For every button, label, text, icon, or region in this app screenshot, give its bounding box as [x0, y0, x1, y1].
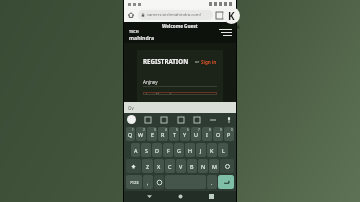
staticText: 1: [132, 128, 134, 132]
button[interactable]: Back: [143, 191, 155, 202]
button[interactable]: Recents: [205, 191, 217, 202]
button[interactable]: Settings: [177, 116, 185, 124]
button[interactable]: Backspace: [220, 159, 234, 173]
button[interactable]: P: [224, 127, 234, 141]
staticText: C: [168, 163, 172, 170]
button[interactable]: A: [131, 143, 140, 157]
button[interactable]: R: [158, 127, 168, 141]
staticText: M: [212, 163, 217, 170]
button[interactable]: F: [163, 143, 173, 157]
button[interactable]: Home: [174, 191, 186, 202]
button[interactable]: T: [169, 127, 179, 141]
staticText: 7: [198, 128, 200, 132]
button[interactable]: O: [213, 127, 223, 141]
staticText: K: [210, 147, 214, 154]
staticText: T: [173, 131, 176, 138]
button[interactable]: .: [207, 175, 217, 189]
button[interactable]: GIF: [160, 116, 168, 124]
staticText: or: [195, 59, 201, 65]
button[interactable]: N: [198, 159, 208, 173]
staticText: N: [201, 163, 206, 170]
button[interactable]: S: [141, 143, 151, 157]
staticText: Ov: [128, 105, 134, 111]
staticText: E: [151, 131, 154, 138]
button[interactable]: Menu: [226, 12, 233, 19]
button[interactable]: ?123: [126, 175, 142, 189]
button[interactable]: More: [209, 116, 217, 124]
staticText: CINEMA: [222, 24, 240, 30]
button[interactable]: U: [191, 127, 201, 141]
staticText: 6: [187, 128, 189, 132]
button[interactable]: M: [209, 159, 219, 173]
button[interactable]: H: [185, 143, 195, 157]
staticText: Welcome Guest: [162, 23, 198, 29]
button[interactable]: L: [218, 143, 228, 157]
staticText: mahindra: [129, 34, 155, 41]
button[interactable]: K: [207, 143, 217, 157]
staticText: 2: [143, 128, 145, 132]
staticText: V: [179, 163, 183, 170]
button[interactable]: Menu: [219, 28, 232, 37]
staticText: Sign in: [201, 59, 217, 65]
button[interactable]: Google: [127, 115, 136, 124]
button[interactable]: Anjney: [143, 76, 217, 87]
staticText: P: [227, 131, 231, 138]
staticText: A: [134, 147, 138, 154]
staticText: 4: [165, 128, 167, 132]
button[interactable]: W: [136, 127, 146, 141]
button[interactable]: careers.techmahindra.com/: [138, 10, 213, 20]
staticText: REGISTRATION: [143, 57, 189, 65]
button[interactable]: D: [152, 143, 162, 157]
button[interactable]: J: [196, 143, 206, 157]
button[interactable]: Tabs: [216, 12, 223, 19]
staticText: I: [206, 131, 208, 138]
staticText: R: [161, 131, 165, 138]
button[interactable]: Clipboard: [193, 116, 201, 124]
staticText: Anjney: [143, 79, 158, 85]
staticText: 8: [209, 128, 211, 132]
button[interactable]: Y: [180, 127, 190, 141]
staticText: W: [138, 131, 144, 138]
button[interactable]: Shift: [126, 159, 141, 173]
staticText: D: [155, 147, 159, 154]
staticText: 5: [176, 128, 178, 132]
button[interactable]: Voice input: [225, 116, 233, 124]
staticText: U: [194, 131, 198, 138]
button[interactable]: Last Name*: [143, 92, 217, 95]
button[interactable]: Z: [142, 159, 153, 173]
staticText: Y: [183, 131, 187, 138]
staticText: Q: [128, 131, 133, 138]
button[interactable]: V: [176, 159, 186, 173]
staticText: TECH: [129, 29, 139, 34]
staticText: J: [200, 147, 202, 154]
button[interactable]: Enter: [218, 175, 234, 189]
button[interactable]: Home: [127, 11, 135, 19]
staticText: B: [190, 163, 194, 170]
staticText: 3: [154, 128, 156, 132]
staticText: ?123: [130, 180, 139, 185]
button[interactable]: E: [147, 127, 157, 141]
staticText: careers.techmahindra.com/: [147, 12, 202, 18]
staticText: .: [211, 179, 213, 186]
button[interactable]: G: [174, 143, 184, 157]
staticText: Last Name*: [146, 92, 172, 95]
button[interactable]: or: [195, 59, 217, 65]
button[interactable]: I: [202, 127, 212, 141]
staticText: 0: [231, 128, 233, 132]
button[interactable]: Emoji: [154, 175, 164, 189]
staticText: S: [145, 147, 148, 154]
button[interactable]: C: [165, 159, 175, 173]
staticText: Z: [146, 163, 150, 170]
button[interactable]: Stickers: [144, 116, 152, 124]
staticText: H: [188, 147, 192, 154]
staticText: L: [222, 147, 225, 154]
staticText: X: [157, 163, 161, 170]
button[interactable]: ,: [143, 175, 153, 189]
button[interactable]: Q: [126, 127, 135, 141]
staticText: ,: [147, 179, 149, 186]
button[interactable]: B: [187, 159, 197, 173]
button[interactable]: X: [154, 159, 164, 173]
staticText: G: [177, 147, 181, 154]
staticText: O: [216, 131, 221, 138]
